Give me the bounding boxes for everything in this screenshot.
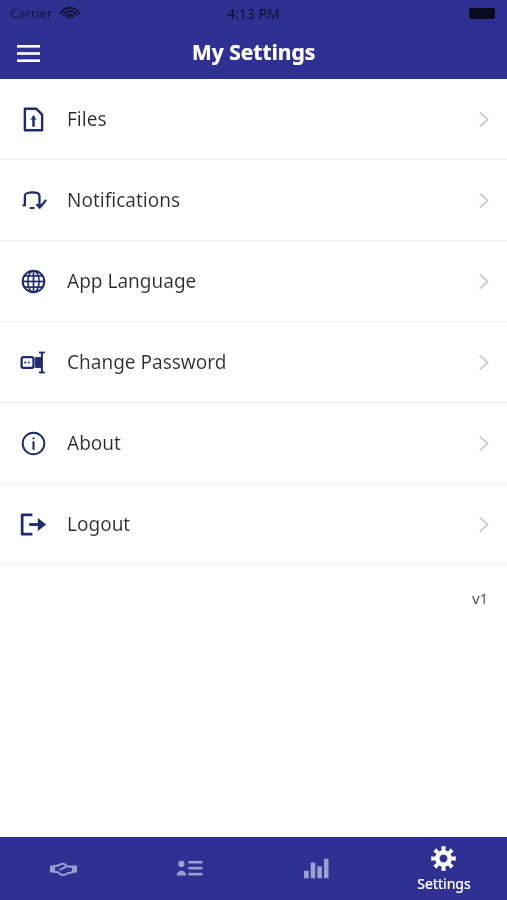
button[interactable]: Open navigation menu	[8, 33, 48, 73]
button[interactable]: Contacts	[126, 837, 253, 900]
staticText: Change Password	[67, 349, 227, 375]
staticText: Settings	[417, 874, 471, 893]
button[interactable]: Reports	[253, 837, 380, 900]
staticText: App Language	[67, 268, 197, 294]
button[interactable]: Files	[0, 79, 507, 159]
staticText: Notifications	[67, 187, 181, 213]
button[interactable]: Notifications	[0, 160, 507, 240]
staticText: Files	[67, 106, 107, 132]
button[interactable]: Settings	[380, 837, 507, 900]
button[interactable]: Logout	[0, 484, 507, 564]
button[interactable]: Deals	[0, 837, 126, 900]
button[interactable]: About	[0, 403, 507, 483]
button[interactable]: App Language	[0, 241, 507, 321]
staticText: Carrier	[10, 4, 53, 22]
staticText: About	[67, 430, 121, 456]
staticText: My Settings	[192, 38, 316, 67]
staticText: Logout	[67, 511, 131, 537]
staticText: 4:13 PM	[227, 4, 280, 23]
staticText: v1	[472, 588, 489, 608]
button[interactable]: Change Password	[0, 322, 507, 402]
